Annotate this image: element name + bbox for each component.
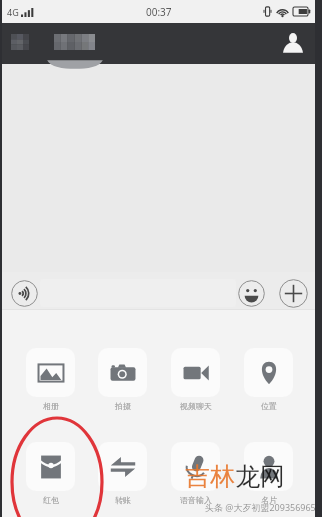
button[interactable]: 相册 (24, 348, 77, 411)
button[interactable]: Back (11, 34, 29, 50)
staticText: 拍摄 (115, 401, 131, 411)
staticText: 4G (7, 6, 19, 18)
staticText: 红包 (43, 495, 59, 505)
button[interactable]: 名片 (242, 442, 295, 505)
button[interactable]: 视频聊天 (169, 348, 222, 411)
staticText: 语音输入 (180, 495, 212, 505)
button[interactable]: 位置 (242, 348, 295, 411)
button[interactable]: More actions (279, 279, 308, 308)
button[interactable]: Voice message (11, 280, 38, 307)
button[interactable]: 转账 (96, 442, 149, 505)
staticText: 00:37 (146, 5, 172, 19)
staticText: 头条 @大歹初盟209356965 (205, 501, 316, 513)
button[interactable]: Emoji (238, 280, 265, 307)
staticText: 视频聊天 (180, 401, 212, 411)
staticText: 位置 (261, 401, 277, 411)
button[interactable]: Contact info (278, 28, 308, 58)
staticText: 龙网 (235, 461, 285, 492)
staticText: 吉林 (185, 461, 235, 492)
button[interactable]: 语音输入 (169, 442, 222, 505)
button[interactable]: 拍摄 (96, 348, 149, 411)
button[interactable]: 红包 (24, 442, 77, 505)
staticText: 名片 (261, 495, 277, 505)
staticText: 相册 (43, 401, 59, 411)
staticText: 转账 (115, 495, 131, 505)
